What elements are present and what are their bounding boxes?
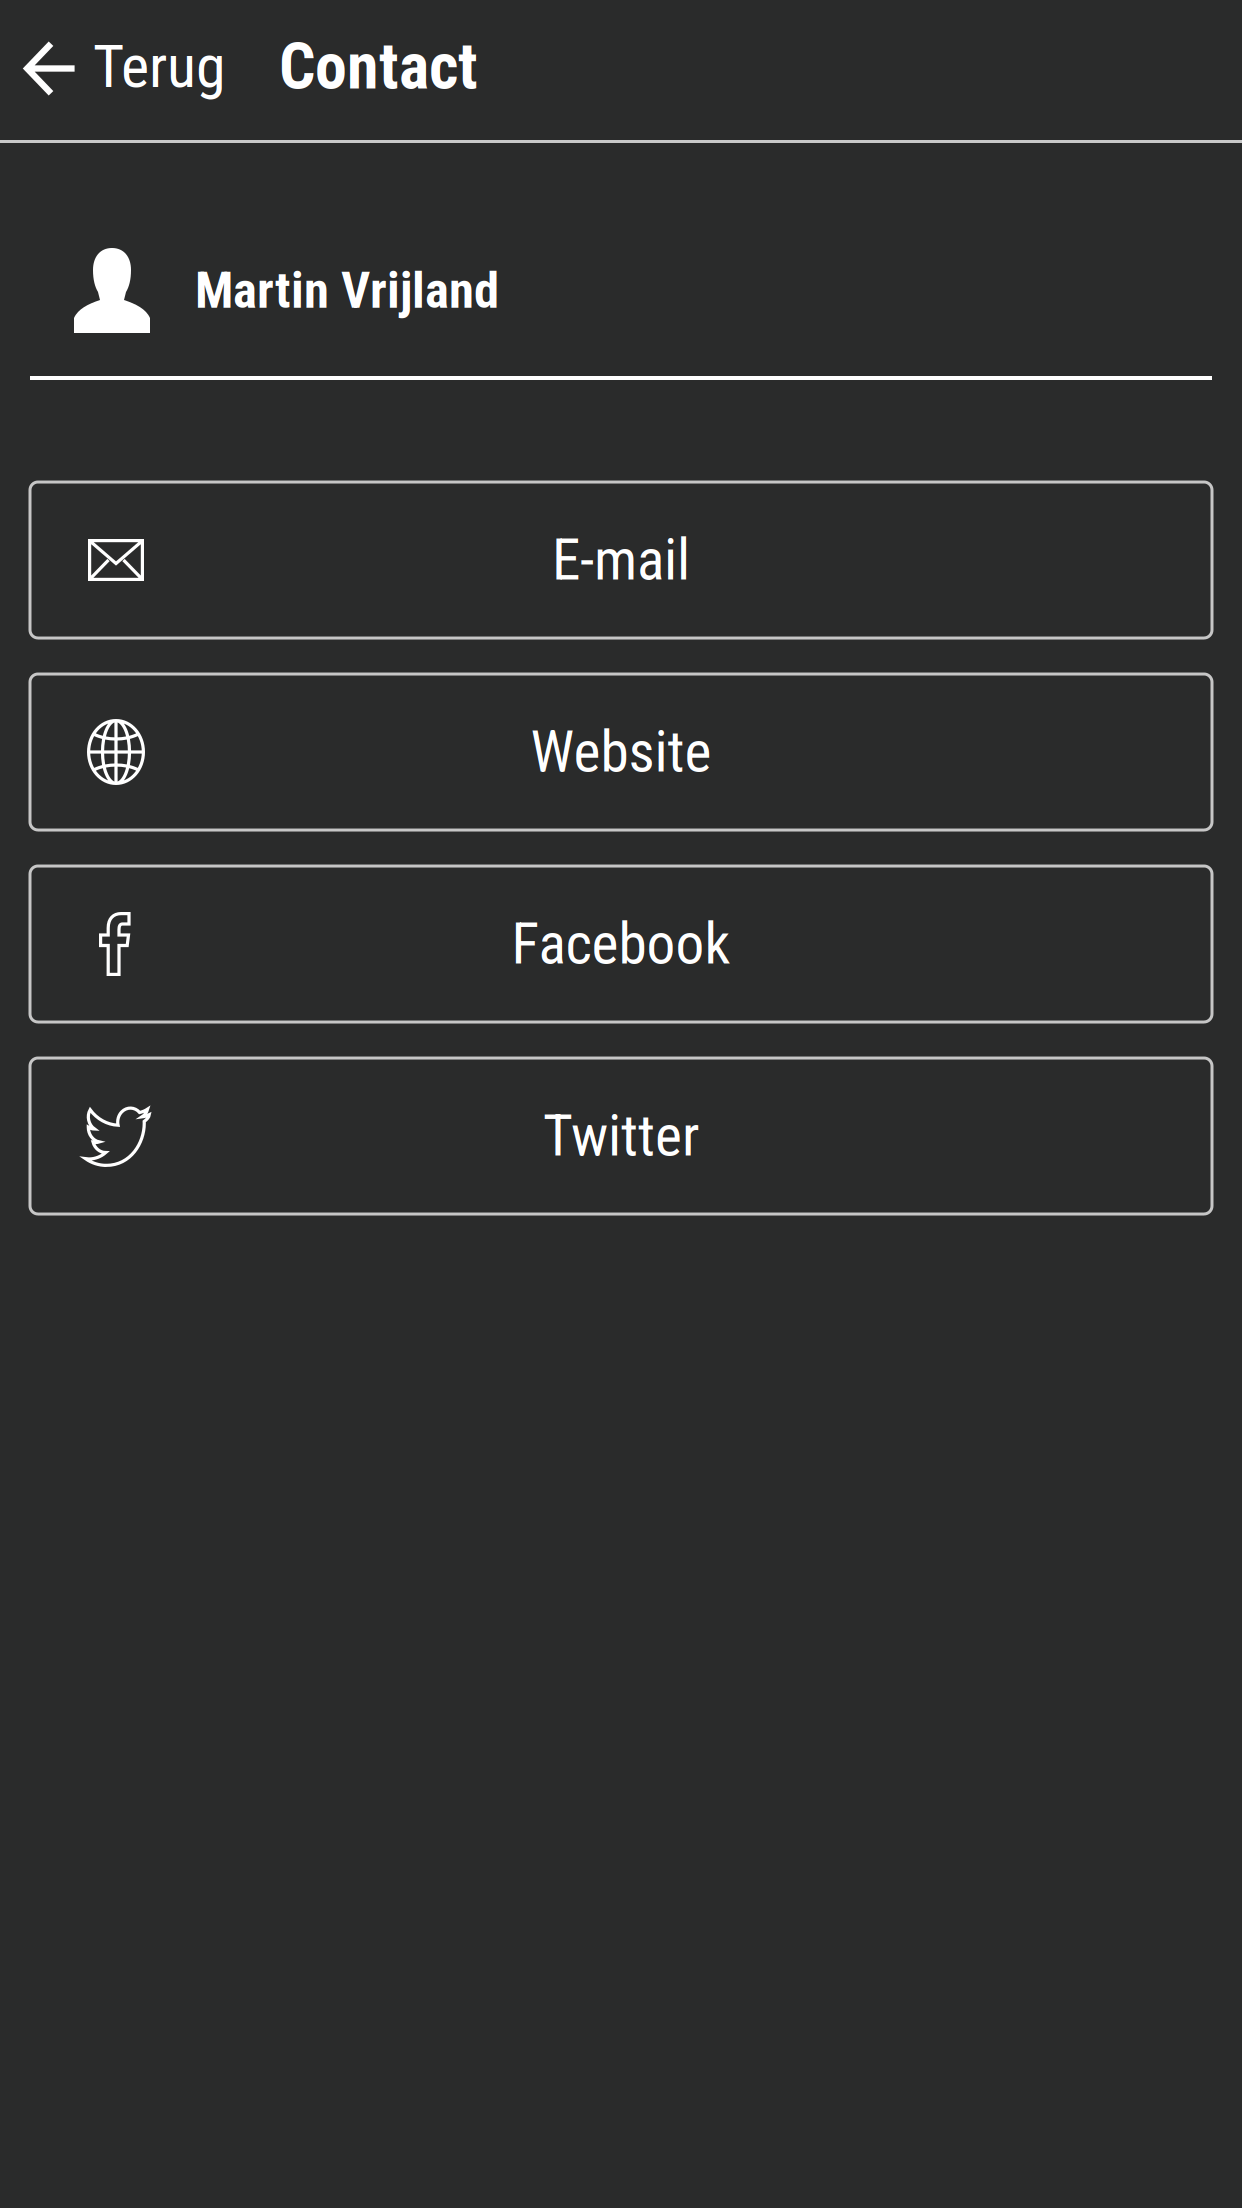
button[interactable]: Facebook [30,866,1212,1022]
button[interactable]: E-mail [30,482,1212,638]
staticText: E-mail [552,526,690,594]
staticText: Martin Vrijland [195,261,499,320]
button[interactable]: Website [30,674,1212,830]
staticText: Facebook [511,910,730,978]
button[interactable]: Twitter [30,1058,1212,1214]
staticText: Contact [279,29,478,104]
staticText: Twitter [543,1102,699,1170]
staticText: Terug [93,31,226,102]
button[interactable]: Martin Vrijland [30,208,1212,380]
staticText: Website [530,718,711,786]
button[interactable]: Terug [0,0,234,133]
